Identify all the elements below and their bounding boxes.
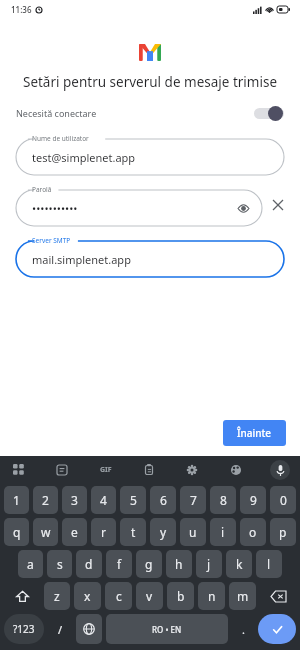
button[interactable]: t — [120, 518, 146, 546]
staticText: z — [54, 588, 60, 604]
staticText: ?123 — [13, 622, 35, 636]
button[interactable]: j — [196, 550, 222, 578]
staticText: w — [41, 524, 51, 540]
staticText: 5 — [130, 492, 137, 508]
staticText: q — [13, 524, 21, 540]
staticText: e — [71, 524, 78, 540]
button[interactable]: Clipboard — [140, 461, 158, 479]
staticText: 8 — [220, 492, 227, 508]
button[interactable]: Necesită conectare — [0, 105, 300, 121]
staticText: s — [57, 556, 63, 572]
button[interactable]: f — [106, 550, 132, 578]
button[interactable]: 0 — [270, 486, 296, 514]
button[interactable]: 3 — [62, 486, 87, 514]
button[interactable]: a — [18, 550, 43, 578]
button[interactable]: Microfon — [270, 460, 290, 480]
button[interactable]: Nume de utilizator — [16, 133, 284, 175]
staticText: u — [189, 524, 197, 540]
button[interactable]: s — [47, 550, 72, 578]
staticText: g — [145, 556, 153, 572]
button[interactable]: ?123 — [4, 614, 44, 644]
button[interactable]: . — [232, 614, 254, 644]
button[interactable]: Teme — [227, 461, 245, 479]
button[interactable]: 1 — [4, 486, 29, 514]
button[interactable]: 9 — [240, 486, 266, 514]
button[interactable]: 2 — [33, 486, 58, 514]
button[interactable]: u — [180, 518, 206, 546]
button[interactable]: Autocolante — [53, 461, 71, 479]
staticText: j — [207, 556, 211, 572]
staticText: Setări pentru serverul de mesaje trimise — [10, 73, 290, 91]
button[interactable]: h — [166, 550, 192, 578]
button[interactable]: Setări — [183, 461, 201, 479]
button[interactable]: 4 — [91, 486, 116, 514]
button[interactable]: w — [33, 518, 58, 546]
button[interactable]: m — [229, 582, 256, 610]
staticText: t — [131, 524, 136, 540]
staticText: d — [85, 556, 93, 572]
button[interactable]: RO • EN — [106, 614, 228, 644]
button[interactable]: z — [44, 582, 70, 610]
button[interactable]: y — [150, 518, 176, 546]
staticText: c — [116, 588, 122, 604]
button[interactable]: Server SMTP — [16, 235, 284, 277]
staticText: 1 — [13, 492, 20, 508]
button[interactable]: Înainte — [223, 420, 286, 446]
button[interactable]: 8 — [210, 486, 236, 514]
staticText: test@simplenet.app — [32, 150, 136, 165]
staticText: Server SMTP — [32, 236, 71, 245]
staticText: Nume de utilizator — [32, 134, 89, 143]
staticText: x — [84, 588, 91, 604]
button[interactable]: v — [136, 582, 163, 610]
button[interactable]: l — [256, 550, 282, 578]
button[interactable]: p — [270, 518, 296, 546]
staticText: o — [249, 524, 257, 540]
staticText: y — [160, 524, 167, 540]
button[interactable]: / — [48, 614, 72, 644]
button[interactable]: q — [4, 518, 29, 546]
button[interactable]: Aplicații — [10, 461, 28, 479]
staticText: GIF — [100, 465, 112, 475]
button[interactable]: g — [136, 550, 162, 578]
staticText: 3 — [71, 492, 78, 508]
button[interactable]: i — [210, 518, 236, 546]
button[interactable]: r — [91, 518, 116, 546]
button[interactable]: Schimbă limba — [76, 614, 102, 644]
staticText: k — [236, 556, 243, 572]
staticText: h — [175, 556, 183, 572]
staticText: n — [208, 588, 216, 604]
staticText: Necesită conectare — [16, 107, 97, 119]
staticText: 7 — [190, 492, 197, 508]
staticText: 11:36 — [11, 4, 32, 15]
button[interactable]: x — [74, 582, 101, 610]
button[interactable]: Shift — [4, 582, 40, 610]
button[interactable]: 6 — [150, 486, 176, 514]
button[interactable]: n — [198, 582, 225, 610]
button[interactable]: c — [105, 582, 132, 610]
staticText: m — [237, 588, 249, 604]
staticText: Înainte — [237, 426, 272, 440]
staticText: 2 — [42, 492, 49, 508]
button[interactable]: k — [226, 550, 252, 578]
staticText: . — [242, 622, 245, 637]
button[interactable]: d — [76, 550, 102, 578]
button[interactable]: Afișează parola — [234, 199, 252, 217]
button[interactable]: GIF — [97, 461, 115, 479]
staticText: p — [279, 524, 287, 540]
staticText: 0 — [280, 492, 287, 508]
staticText: RO • EN — [152, 624, 182, 635]
button[interactable]: Șterge — [268, 195, 288, 215]
button[interactable]: e — [62, 518, 87, 546]
button[interactable]: Ștergere — [260, 582, 296, 610]
button[interactable]: o — [240, 518, 266, 546]
button[interactable]: 5 — [120, 486, 146, 514]
button[interactable]: Parolă — [16, 184, 262, 226]
staticText: ••••••••••• — [32, 201, 78, 216]
button[interactable]: 7 — [180, 486, 206, 514]
button[interactable]: Gata — [258, 614, 296, 644]
staticText: l — [267, 556, 271, 572]
staticText: 6 — [160, 492, 167, 508]
button[interactable]: b — [167, 582, 194, 610]
staticText: f — [117, 556, 122, 572]
staticText: i — [221, 524, 225, 540]
